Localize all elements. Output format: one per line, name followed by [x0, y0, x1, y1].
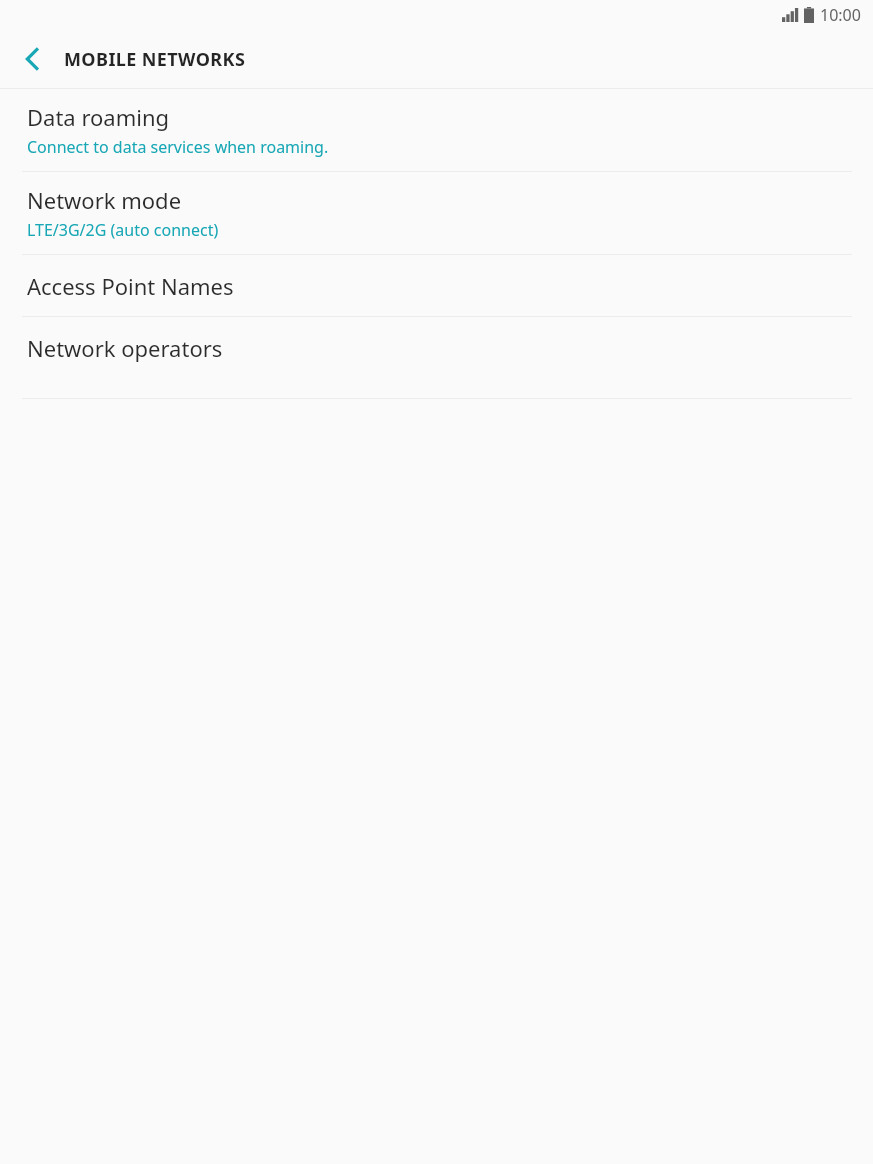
- staticText: Network mode: [27, 185, 182, 215]
- button[interactable]: Network mode: [0, 172, 873, 254]
- staticText: Network operators: [27, 333, 223, 363]
- staticText: LTE/3G/2G (auto connect): [27, 219, 219, 241]
- staticText: Connect to data services when roaming.: [27, 136, 329, 158]
- staticText: MOBILE NETWORKS: [64, 47, 246, 72]
- staticText: Data roaming: [27, 102, 170, 132]
- staticText: 10:00: [820, 4, 861, 26]
- staticText: Access Point Names: [27, 271, 234, 301]
- button[interactable]: Data roaming: [0, 89, 873, 171]
- button[interactable]: Back: [8, 35, 56, 83]
- button[interactable]: Network operators: [0, 317, 873, 378]
- button[interactable]: Access Point Names: [0, 255, 873, 316]
